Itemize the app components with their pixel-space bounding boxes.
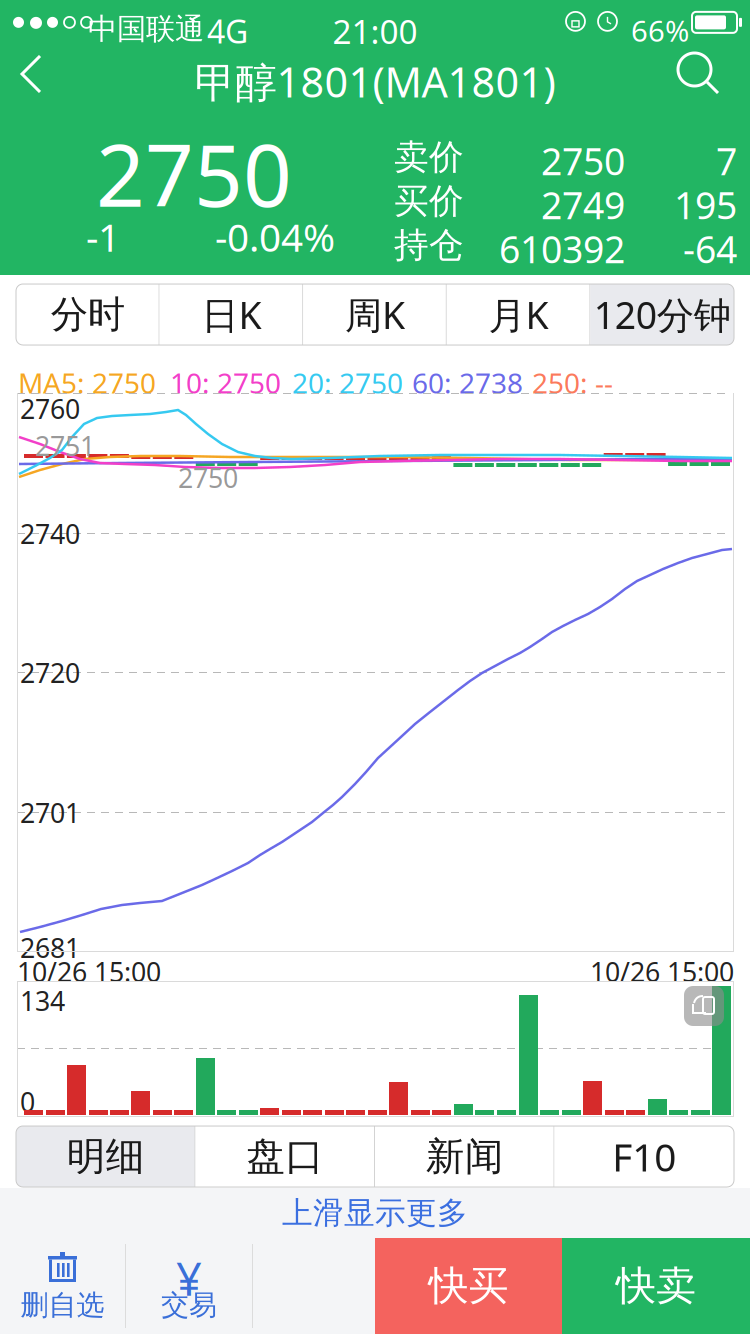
staticText: 分时 [51, 292, 125, 337]
staticText: 2750 [96, 117, 292, 230]
staticText: 20: 2750 [292, 364, 403, 401]
staticText: 交易 [161, 1288, 217, 1322]
button[interactable]: 新闻 [375, 1126, 554, 1187]
button[interactable]: 删自选 [0, 1238, 125, 1334]
staticText: MA5: 2750 [18, 364, 156, 401]
staticText: 7 [716, 136, 737, 186]
staticText: 持仓 [394, 224, 464, 267]
staticText: 2720 [20, 655, 80, 690]
button[interactable]: ¥ [126, 1238, 252, 1334]
button[interactable]: Rotate screen [684, 986, 724, 1026]
staticText: 2681 [20, 930, 80, 965]
button[interactable]: 周K [303, 284, 447, 345]
button[interactable]: 月K [447, 284, 590, 345]
staticText: 盘口 [246, 1133, 324, 1180]
staticText: -0.04% [215, 211, 335, 262]
staticText: 66% [631, 11, 689, 50]
staticText: 21:00 [332, 9, 417, 53]
staticText: 120分钟 [594, 290, 731, 339]
staticText: 删自选 [20, 1288, 104, 1322]
button[interactable]: 日K [160, 284, 303, 345]
button[interactable]: Search [672, 48, 728, 100]
staticText: 610392 [499, 224, 625, 274]
staticText: 4G [207, 10, 248, 52]
staticText: 新闻 [426, 1133, 504, 1180]
staticText: 2750 [178, 460, 238, 495]
staticText: 60: 2738 [412, 364, 523, 401]
staticText: 10/26 15:00 [590, 954, 734, 989]
button[interactable]: 快卖 [562, 1238, 750, 1334]
staticText: 日K [201, 290, 261, 339]
staticText: 快买 [428, 1261, 508, 1310]
staticText: 10: 2750 [170, 364, 281, 401]
staticText: 10/26 15:00 [17, 954, 161, 989]
staticText: 2760 [20, 391, 80, 426]
staticText: 2740 [20, 516, 80, 551]
button[interactable]: Back [8, 48, 64, 100]
staticText: 2750 [541, 136, 625, 186]
staticText: 明细 [67, 1133, 145, 1180]
staticText: 甲醇1801(MA1801) [194, 54, 555, 109]
staticText: 0 [20, 1084, 35, 1119]
button[interactable]: 快买 [375, 1238, 562, 1334]
button[interactable]: 分时 [16, 284, 160, 345]
staticText: 上滑显示更多 [282, 1194, 468, 1232]
staticText: 195 [674, 180, 737, 230]
staticText: 2749 [541, 180, 625, 230]
staticText: F10 [612, 1131, 676, 1182]
staticText: 2751 [35, 428, 95, 463]
button[interactable]: F10 [554, 1126, 734, 1187]
staticText: -64 [683, 224, 737, 274]
staticText: -1 [86, 211, 120, 262]
staticText: 快卖 [616, 1261, 696, 1310]
button[interactable]: 明细 [16, 1126, 195, 1187]
staticText: ¥ [176, 1248, 202, 1308]
staticText: 月K [489, 290, 549, 339]
staticText: 250: -- [532, 364, 613, 401]
staticText: 卖价 [394, 136, 464, 179]
button[interactable]: 120分钟 [590, 284, 734, 345]
staticText: 买价 [394, 180, 464, 223]
staticText: 134 [20, 983, 65, 1018]
staticText: 周K [345, 290, 405, 339]
button[interactable]: 盘口 [195, 1126, 375, 1187]
staticText: 中国联通 [88, 11, 204, 47]
staticText: 2701 [20, 795, 80, 830]
